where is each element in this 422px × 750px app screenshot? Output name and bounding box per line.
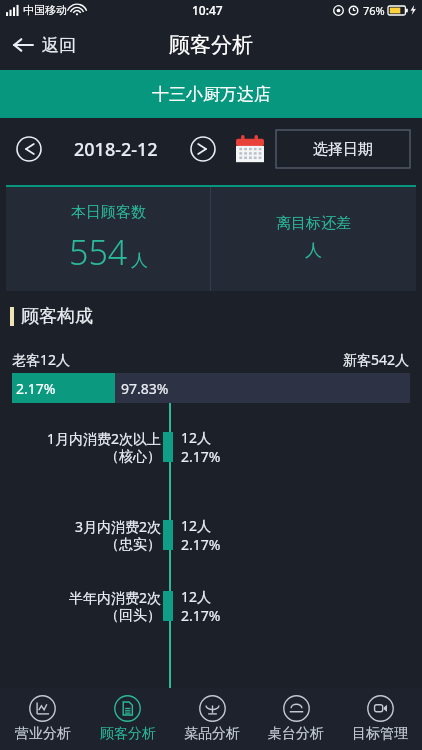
staticText: 2.17% — [181, 535, 221, 554]
staticText: 选择日期 — [313, 140, 373, 159]
staticText: 中国移动 — [23, 3, 67, 17]
button[interactable]: 下一天 — [186, 132, 220, 166]
button[interactable]: 返回 — [0, 28, 86, 62]
staticText: （忠实） — [105, 536, 161, 554]
staticText: 本日顾客数 — [71, 203, 146, 222]
button[interactable]: 菜品分析 — [170, 688, 254, 750]
staticText: 返回 — [42, 35, 76, 56]
staticText: 新客542人 — [343, 350, 410, 369]
staticText: 554 — [69, 229, 128, 275]
staticText: 12人 — [181, 516, 212, 535]
staticText: 人 — [305, 240, 322, 261]
staticText: 顾客分析 — [169, 32, 253, 58]
button[interactable]: 3月内消费2次 — [0, 491, 422, 579]
staticText: （核心） — [105, 448, 161, 466]
staticText: 2018-2-12 — [74, 137, 158, 162]
staticText: 12人 — [181, 428, 212, 447]
staticText: 营业分析 — [15, 725, 71, 743]
staticText: 2.17% — [16, 379, 56, 398]
staticText: 十三小厨万达店 — [152, 84, 271, 105]
button[interactable]: 桌台分析 — [254, 688, 338, 750]
staticText: 76% — [363, 3, 385, 18]
button[interactable]: 选择日期 — [276, 130, 410, 168]
staticText: （回头） — [105, 607, 161, 625]
staticText: 10:47 — [192, 2, 223, 18]
staticText: 菜品分析 — [184, 725, 240, 743]
staticText: 3月内消费2次 — [74, 517, 161, 536]
staticText: 老客12人 — [12, 350, 71, 369]
button[interactable]: 日历 — [234, 133, 266, 165]
button[interactable]: 半年内消费2次 — [0, 579, 422, 633]
button[interactable]: 顾客分析 — [85, 688, 170, 750]
staticText: 桌台分析 — [268, 725, 324, 743]
staticText: 2.17% — [181, 447, 221, 466]
button[interactable]: 1月内消费2次以上 — [0, 403, 422, 491]
staticText: 1月内消费2次以上 — [46, 429, 161, 448]
staticText: 人 — [131, 250, 148, 271]
staticText: 目标管理 — [352, 725, 408, 743]
staticText: 离目标还差 — [276, 214, 351, 233]
staticText: 12人 — [181, 587, 212, 606]
button[interactable]: 上一天 — [12, 132, 46, 166]
button[interactable]: 营业分析 — [0, 688, 85, 750]
staticText: 顾客分析 — [100, 725, 156, 743]
button[interactable]: 目标管理 — [338, 688, 422, 750]
staticText: 2.17% — [181, 606, 221, 625]
staticText: 半年内消费2次 — [68, 588, 161, 607]
staticText: 顾客构成 — [21, 305, 93, 328]
staticText: 97.83% — [121, 379, 169, 398]
